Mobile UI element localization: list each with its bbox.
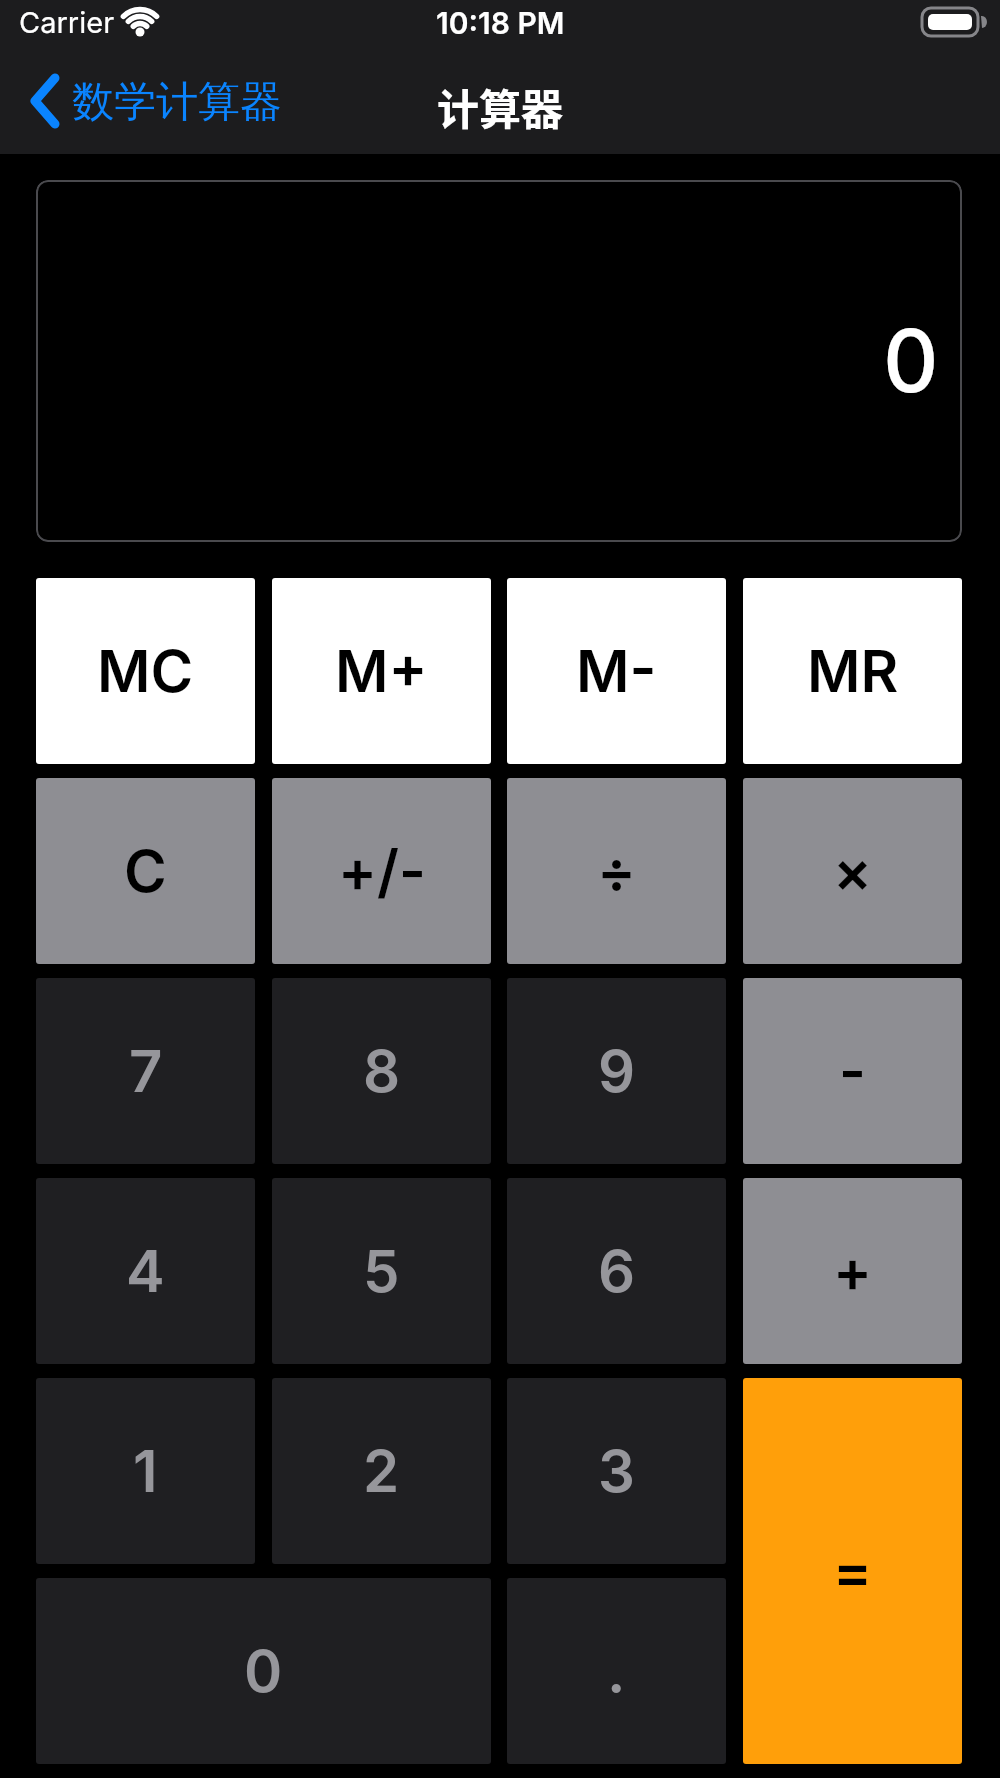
staticText: 0 (244, 1636, 283, 1706)
staticText: Carrier (19, 5, 115, 40)
staticText: C (124, 836, 167, 906)
staticText: 8 (363, 1036, 401, 1106)
staticText: MC (97, 636, 194, 706)
staticText: 计算器 (437, 76, 564, 137)
staticText: 4 (126, 1236, 165, 1306)
button[interactable]: 1 (36, 1378, 255, 1564)
button[interactable]: MR (743, 578, 962, 764)
button[interactable]: 4 (36, 1178, 255, 1364)
staticText: MR (807, 636, 899, 706)
button[interactable]: 6 (507, 1178, 726, 1364)
button[interactable]: 7 (36, 978, 255, 1164)
button[interactable]: 3 (507, 1378, 726, 1564)
staticText: = (833, 1536, 873, 1606)
staticText: . (607, 1636, 626, 1706)
staticText: 2 (363, 1436, 400, 1506)
button[interactable]: MC (36, 578, 255, 764)
button[interactable]: + (743, 1178, 962, 1364)
button[interactable]: 5 (272, 1178, 491, 1364)
staticText: 9 (598, 1036, 636, 1106)
staticText: 0 (883, 309, 939, 413)
button[interactable]: +/- (272, 778, 491, 964)
staticText: + (833, 1236, 873, 1306)
staticText: M+ (335, 636, 428, 706)
button[interactable]: 0 (36, 180, 962, 542)
staticText: - (839, 1036, 866, 1106)
button[interactable]: M- (507, 578, 726, 764)
button[interactable]: . (507, 1578, 726, 1764)
staticText: 6 (598, 1236, 636, 1306)
staticText: 10:18 PM (436, 5, 565, 41)
staticText: × (833, 836, 873, 906)
button[interactable]: 9 (507, 978, 726, 1164)
button[interactable]: C (36, 778, 255, 964)
button[interactable]: 0 (36, 1578, 491, 1764)
button[interactable]: 8 (272, 978, 491, 1164)
button[interactable]: 2 (272, 1378, 491, 1564)
staticText: ÷ (597, 836, 637, 906)
button[interactable]: × (743, 778, 962, 964)
button[interactable]: ÷ (507, 778, 726, 964)
button[interactable]: - (743, 978, 962, 1164)
staticText: M- (576, 636, 657, 706)
staticText: 3 (598, 1436, 635, 1506)
staticText: 7 (129, 1036, 163, 1106)
button[interactable]: = (743, 1378, 962, 1764)
staticText: 5 (363, 1236, 400, 1306)
staticText: 数学计算器 (72, 76, 282, 129)
staticText: +/- (338, 836, 426, 906)
button[interactable]: M+ (272, 578, 491, 764)
staticText: 1 (133, 1436, 158, 1506)
